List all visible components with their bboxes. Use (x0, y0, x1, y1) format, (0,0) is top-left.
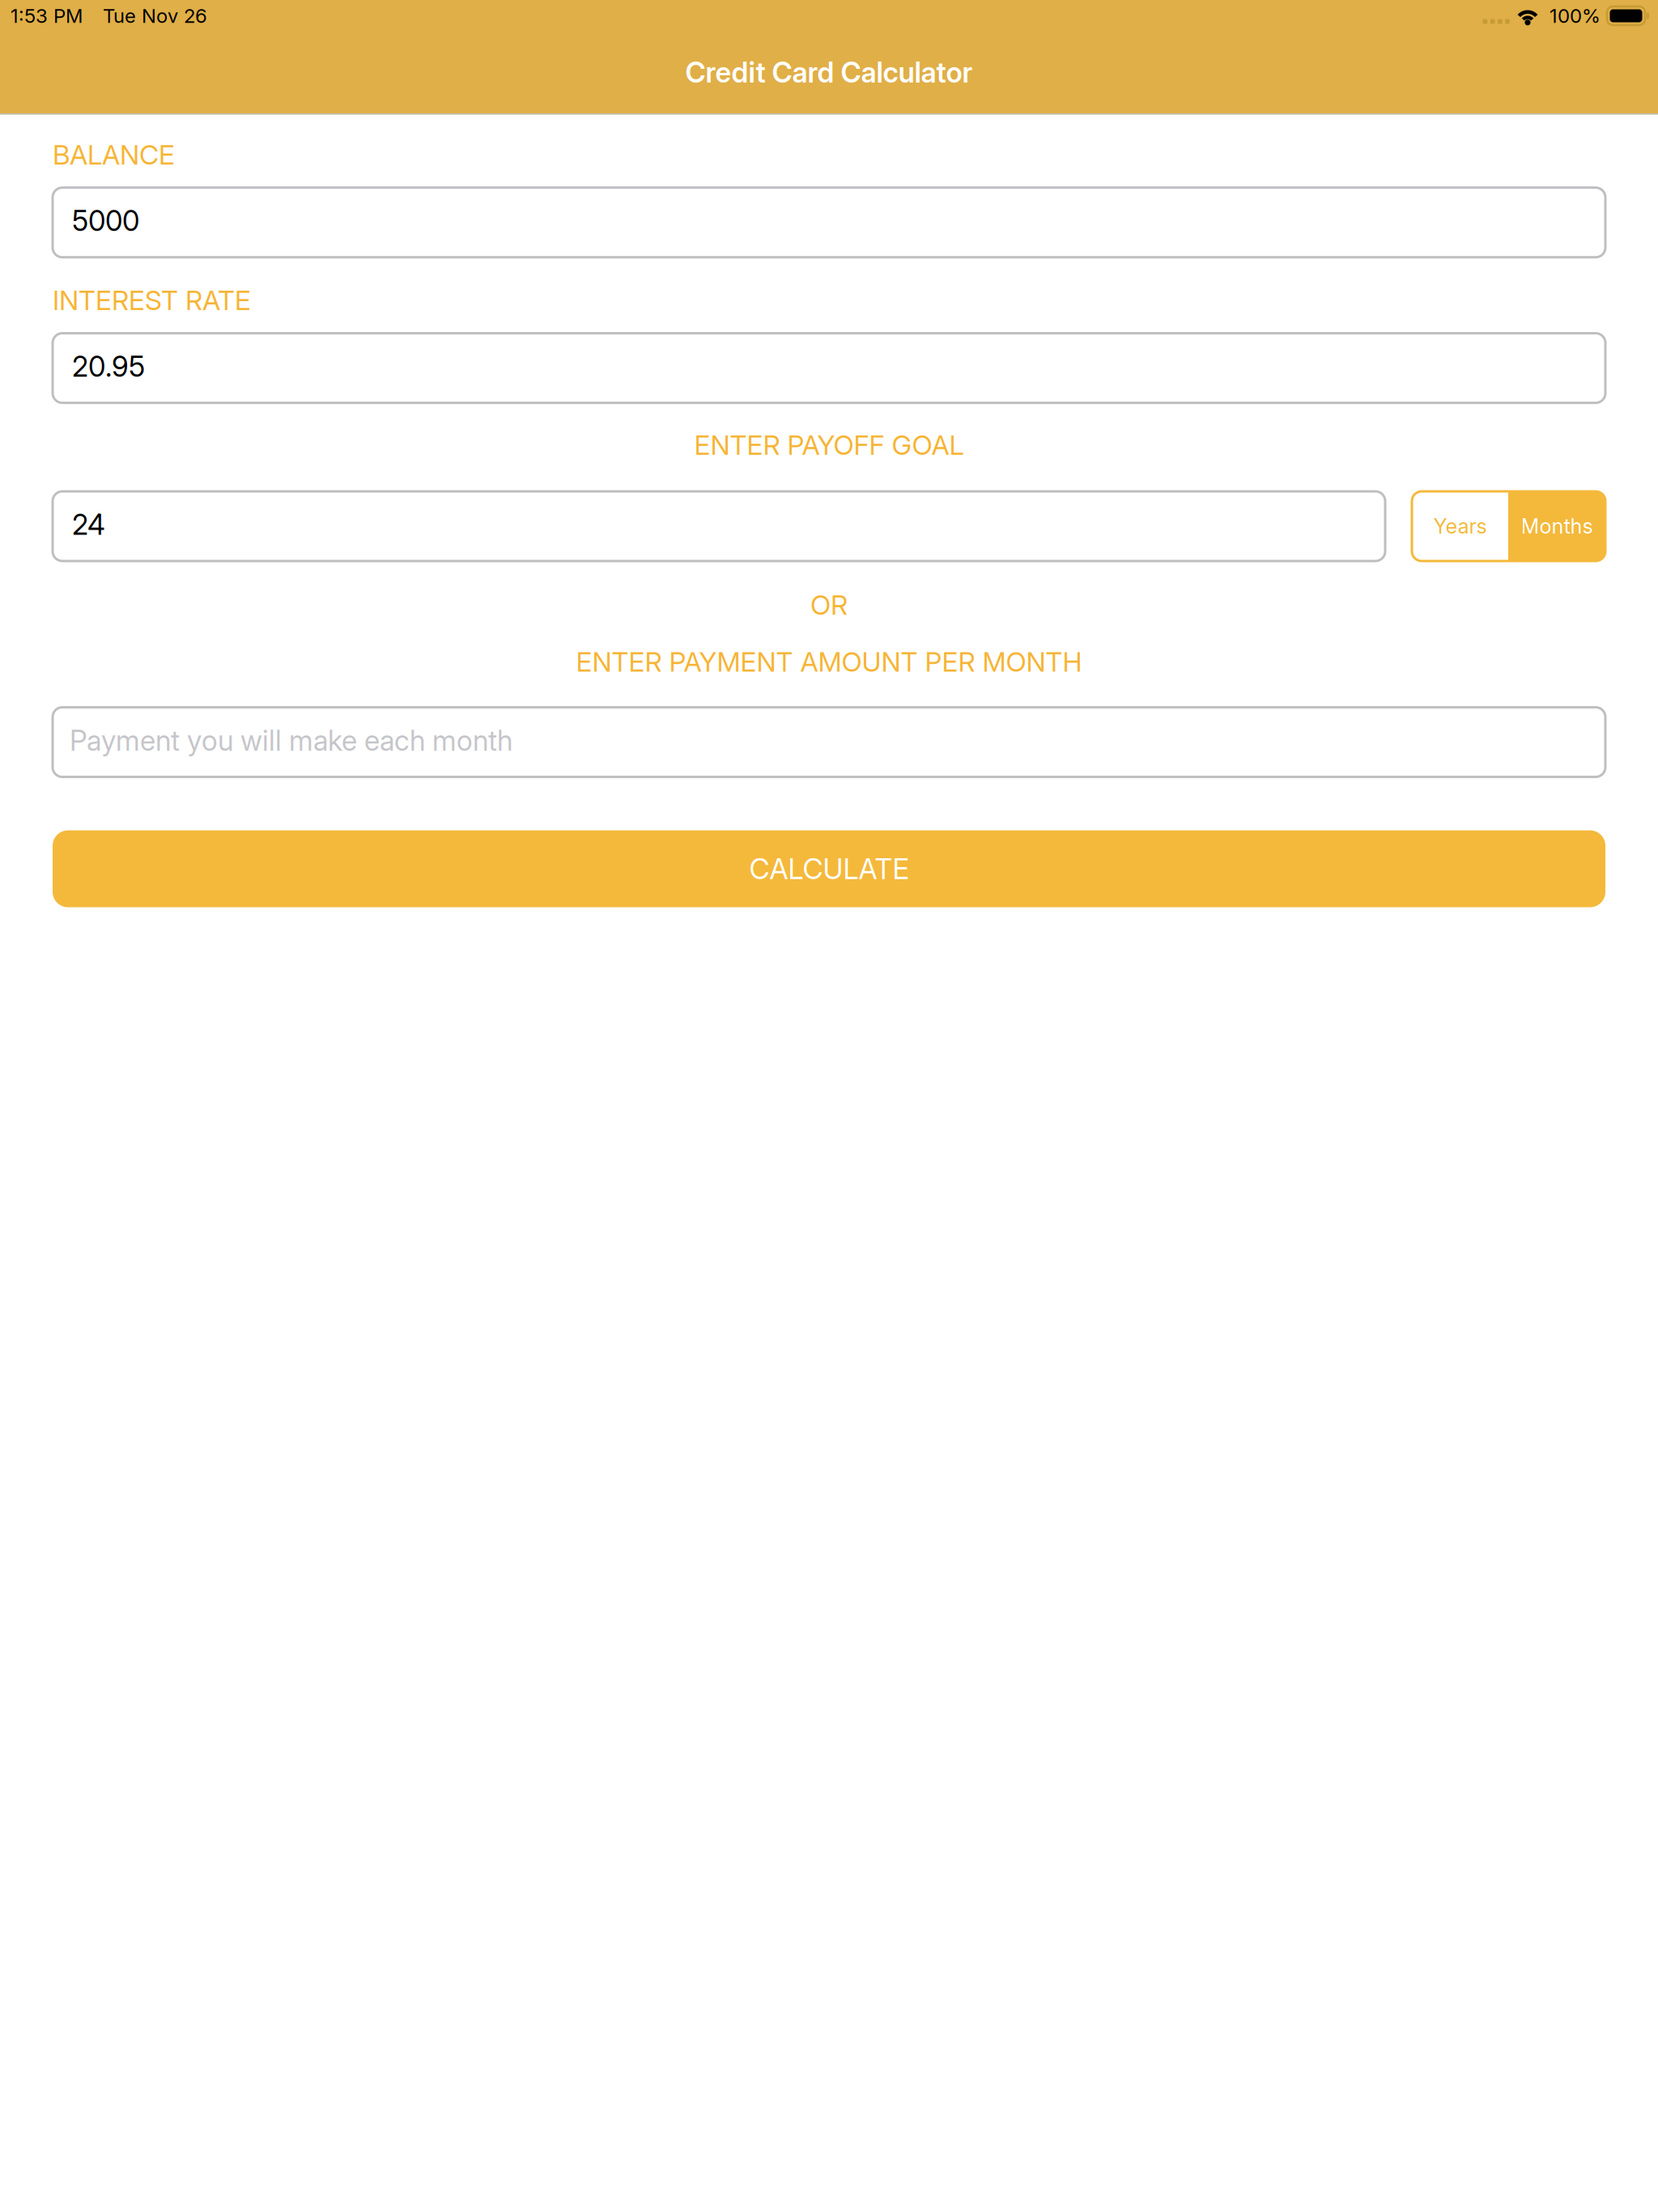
staticText: 100% (1550, 4, 1601, 28)
button[interactable]: 5000 (53, 188, 1605, 257)
staticText: Years (1433, 514, 1487, 539)
staticText: 20.95 (72, 349, 145, 383)
staticText: Tue Nov 26 (103, 4, 207, 28)
staticText: Months (1521, 514, 1593, 539)
staticText: INTEREST RATE (53, 284, 251, 317)
button[interactable]: Months (1508, 491, 1605, 561)
button[interactable]: 20.95 (53, 333, 1605, 403)
staticText: 1:53 PM (11, 4, 83, 28)
staticText: 5000 (72, 204, 139, 238)
staticText: BALANCE (53, 138, 175, 171)
button[interactable]: Years (1412, 491, 1508, 561)
button[interactable]: 24 (53, 491, 1385, 561)
staticText: Payment you will make each month (70, 724, 512, 757)
staticText: ENTER PAYOFF GOAL (694, 429, 964, 461)
staticText: CALCULATE (749, 852, 909, 886)
staticText: OR (810, 589, 848, 621)
staticText: Credit Card Calculator (685, 55, 973, 89)
button[interactable]: Payment you will make each month (53, 707, 1605, 777)
staticText: ENTER PAYMENT AMOUNT PER MONTH (576, 645, 1082, 678)
staticText: 24 (72, 508, 105, 542)
button[interactable]: CALCULATE (53, 830, 1605, 907)
